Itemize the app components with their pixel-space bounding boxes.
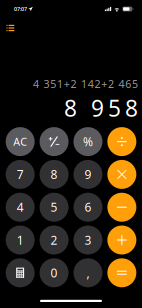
- button[interactable]: Plus: [107, 225, 136, 254]
- staticText: 8 958: [64, 93, 138, 123]
- staticText: 2: [51, 232, 58, 248]
- staticText: AC: [13, 134, 27, 149]
- button[interactable]: 2: [40, 225, 69, 254]
- staticText: 9: [84, 166, 91, 182]
- button[interactable]: ,: [73, 258, 102, 287]
- staticText: 07:07: [14, 5, 27, 13]
- staticText: 4: [17, 199, 24, 215]
- staticText: 3: [84, 232, 91, 248]
- staticText: 7: [17, 166, 24, 182]
- button[interactable]: History: [3, 21, 17, 35]
- button[interactable]: 5: [40, 193, 69, 222]
- button[interactable]: Plus minus: [40, 127, 69, 156]
- button[interactable]: Divide: [107, 127, 136, 156]
- staticText: ,: [86, 265, 89, 281]
- button[interactable]: 3: [73, 225, 102, 254]
- button[interactable]: 0: [40, 258, 69, 287]
- staticText: %: [83, 134, 93, 149]
- button[interactable]: Minus: [107, 193, 136, 222]
- staticText: 1: [17, 232, 24, 248]
- button[interactable]: Equals: [107, 258, 136, 287]
- button[interactable]: AC: [6, 127, 35, 156]
- staticText: 4 351+2 142+2 465: [33, 77, 138, 91]
- button[interactable]: 7: [6, 160, 35, 189]
- button[interactable]: %: [73, 127, 102, 156]
- staticText: 8: [51, 166, 58, 182]
- staticText: 6: [84, 199, 91, 215]
- button[interactable]: 9: [73, 160, 102, 189]
- button[interactable]: Calculator: [6, 258, 35, 287]
- button[interactable]: 8: [40, 160, 69, 189]
- button[interactable]: 6: [73, 193, 102, 222]
- staticText: 5: [51, 199, 58, 215]
- staticText: 0: [51, 265, 58, 281]
- button[interactable]: 1: [6, 225, 35, 254]
- button[interactable]: 4: [6, 193, 35, 222]
- button[interactable]: Multiply: [107, 160, 136, 189]
